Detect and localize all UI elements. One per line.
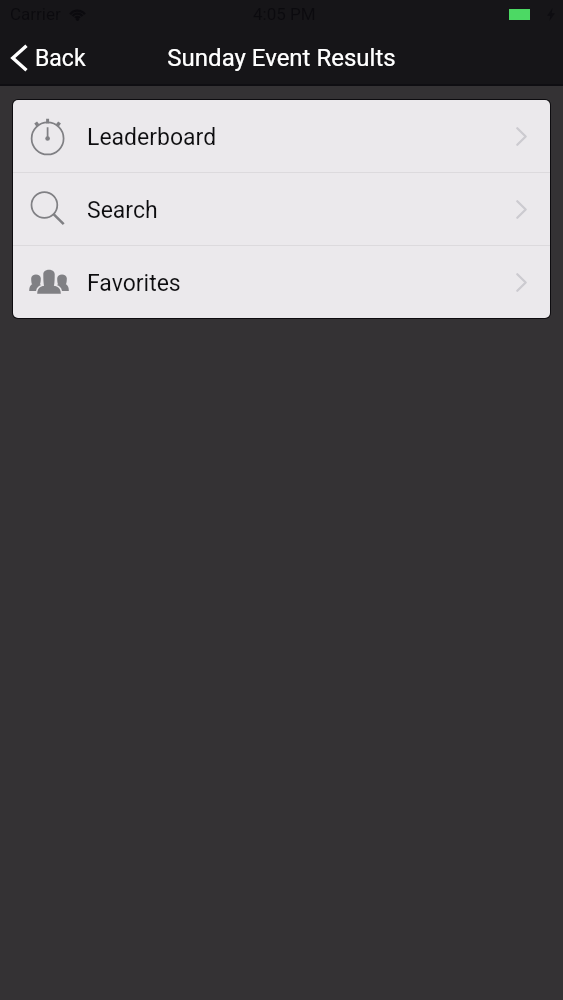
- staticText: Search: [87, 197, 158, 224]
- button[interactable]: Favorites: [13, 246, 550, 318]
- staticText: Back: [35, 45, 86, 72]
- staticText: Favorites: [87, 270, 181, 297]
- button[interactable]: Back: [0, 36, 98, 80]
- button[interactable]: Search: [13, 173, 550, 245]
- staticText: Leaderboard: [87, 124, 217, 151]
- staticText: Carrier: [10, 4, 61, 24]
- staticText: Sunday Event Results: [167, 44, 396, 72]
- staticText: 4:05 PM: [253, 4, 316, 24]
- button[interactable]: Leaderboard: [13, 100, 550, 172]
